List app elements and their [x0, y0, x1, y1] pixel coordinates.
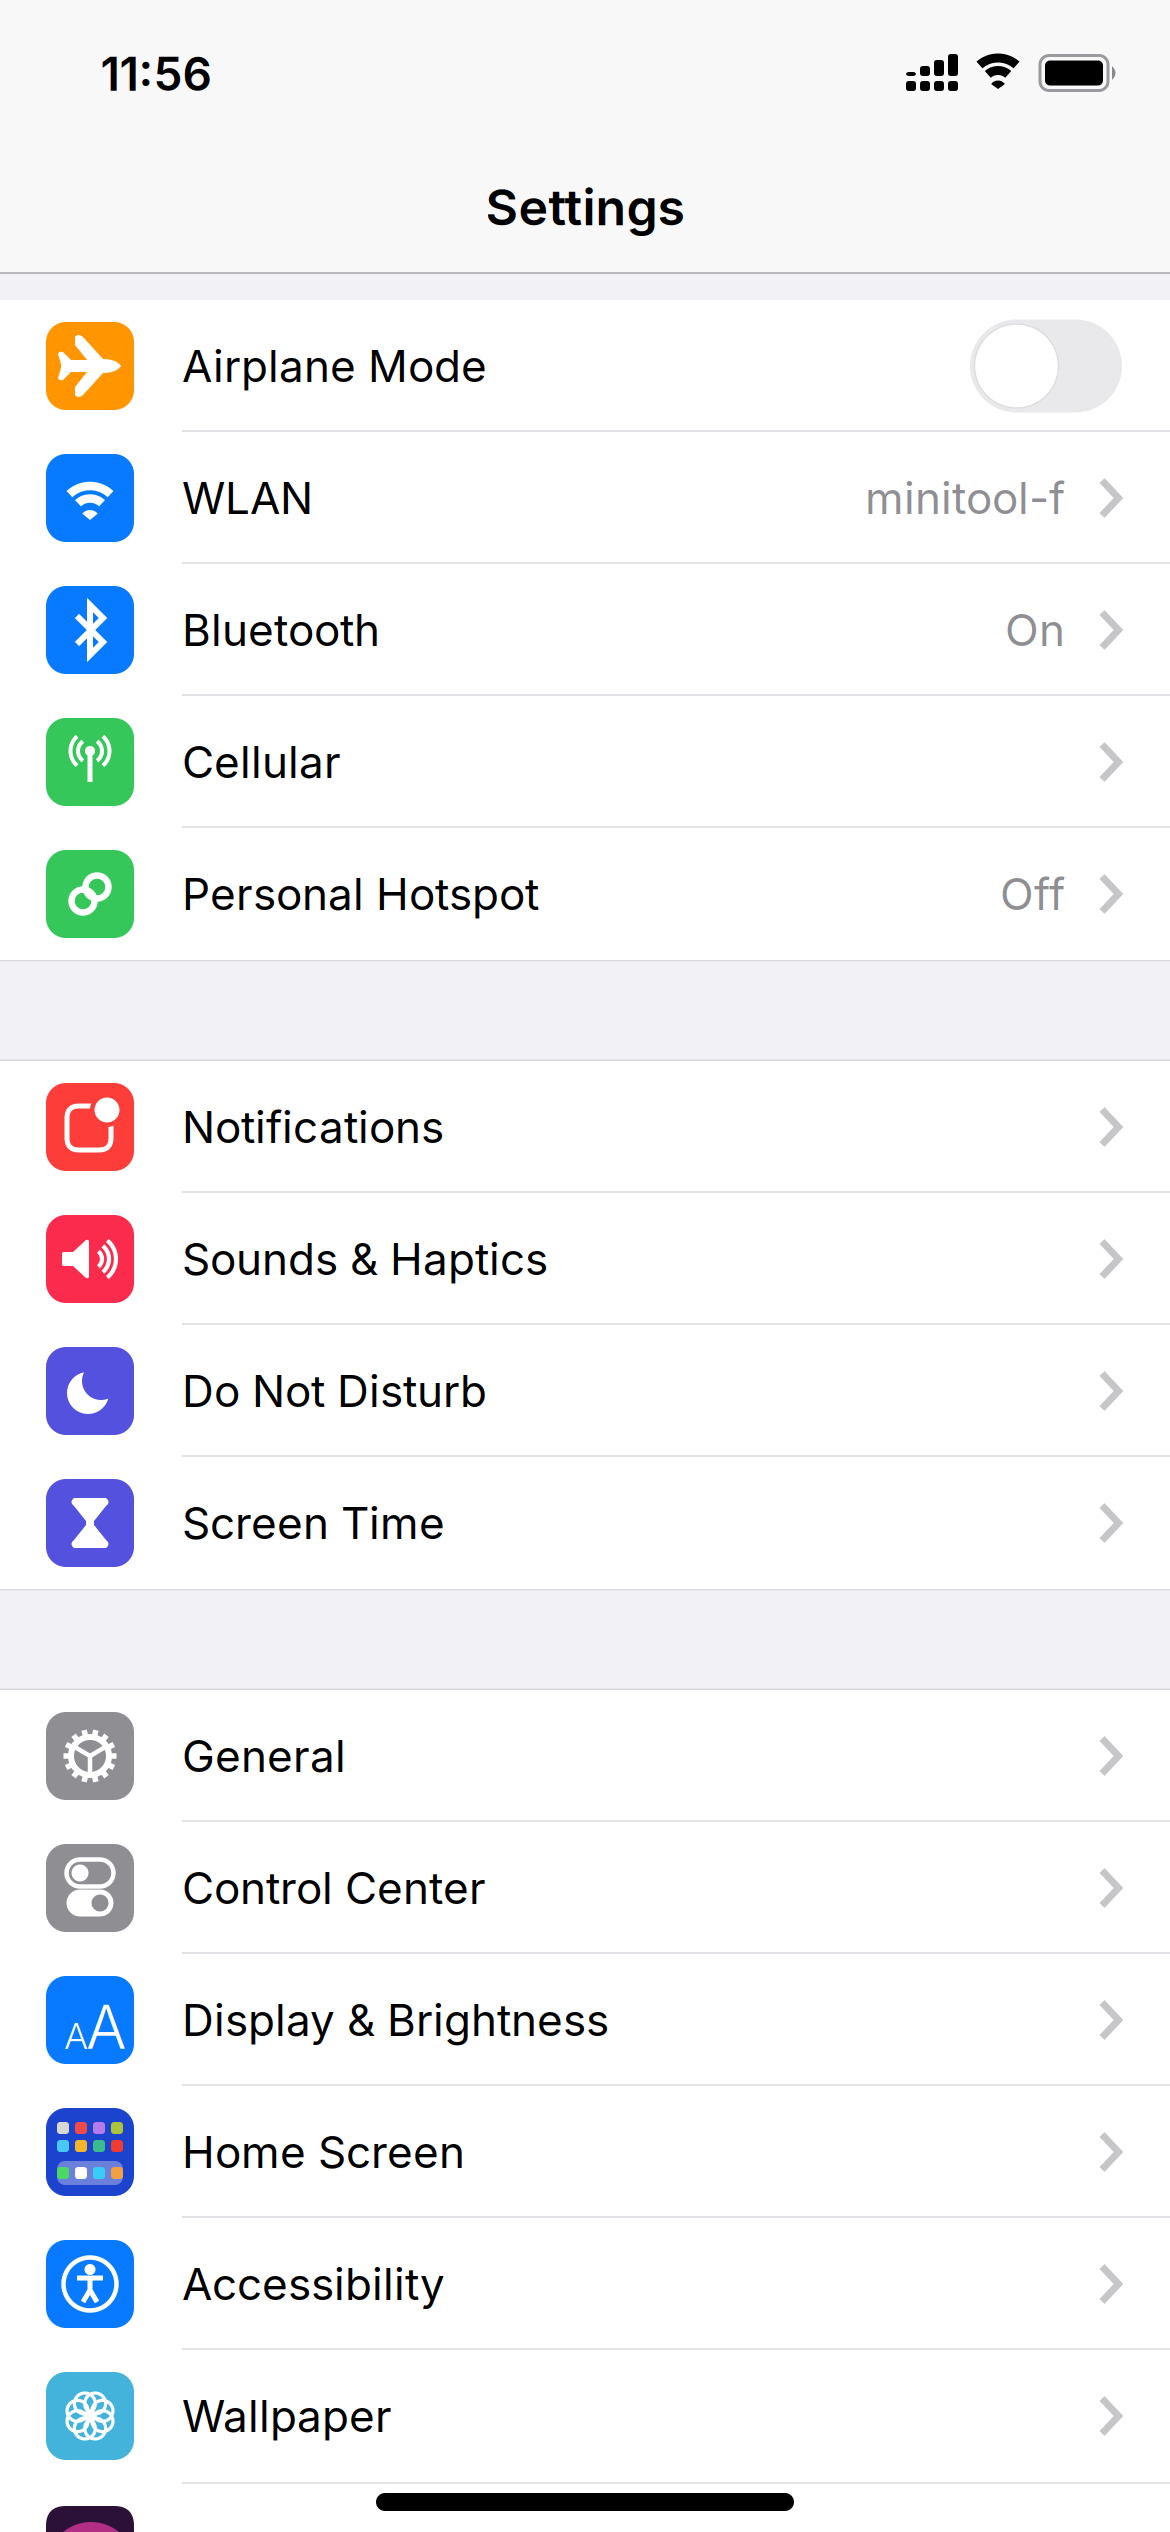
button[interactable]: Wallpaper — [0, 2350, 1170, 2482]
staticText: Settings — [485, 177, 684, 237]
staticText: Wallpaper — [182, 2389, 392, 2443]
staticText: A — [86, 1991, 126, 2063]
button[interactable]: Cellular — [0, 696, 1170, 828]
staticText: Do Not Disturb — [182, 1364, 487, 1418]
staticText: On — [1005, 603, 1065, 657]
button[interactable]: Siri & Search — [0, 2482, 1170, 2532]
staticText: Off — [1000, 867, 1065, 921]
button[interactable]: Accessibility — [0, 2218, 1170, 2350]
staticText: Accessibility — [182, 2257, 445, 2311]
staticText: Home Screen — [182, 2125, 465, 2179]
staticText: A — [64, 2014, 87, 2058]
staticText: minitool-f — [865, 471, 1065, 525]
staticText: WLAN — [182, 471, 313, 525]
staticText: Personal Hotspot — [182, 867, 539, 921]
button[interactable]: Airplane Mode — [0, 300, 1170, 432]
staticText: Bluetooth — [182, 603, 380, 657]
staticText: Screen Time — [182, 1496, 445, 1550]
button[interactable]: Screen Time — [0, 1457, 1170, 1589]
button[interactable]: A — [0, 1954, 1170, 2086]
button[interactable]: Bluetooth — [0, 564, 1170, 696]
button[interactable]: General — [0, 1690, 1170, 1822]
button[interactable]: Notifications — [0, 1061, 1170, 1193]
staticText: Cellular — [182, 735, 341, 789]
button[interactable]: Home Screen — [0, 2086, 1170, 2218]
button[interactable]: Control Center — [0, 1822, 1170, 1954]
button[interactable]: Personal Hotspot — [0, 828, 1170, 960]
button[interactable]: Do Not Disturb — [0, 1325, 1170, 1457]
staticText: Sounds & Haptics — [182, 1232, 548, 1286]
staticText: Airplane Mode — [182, 339, 487, 393]
staticText: Control Center — [182, 1861, 486, 1915]
button[interactable]: Sounds & Haptics — [0, 1193, 1170, 1325]
button[interactable]: WLAN — [0, 432, 1170, 564]
staticText: General — [182, 1729, 346, 1783]
staticText: Notifications — [182, 1100, 444, 1154]
staticText: 11:56 — [100, 46, 211, 102]
staticText: Display & Brightness — [182, 1993, 609, 2047]
